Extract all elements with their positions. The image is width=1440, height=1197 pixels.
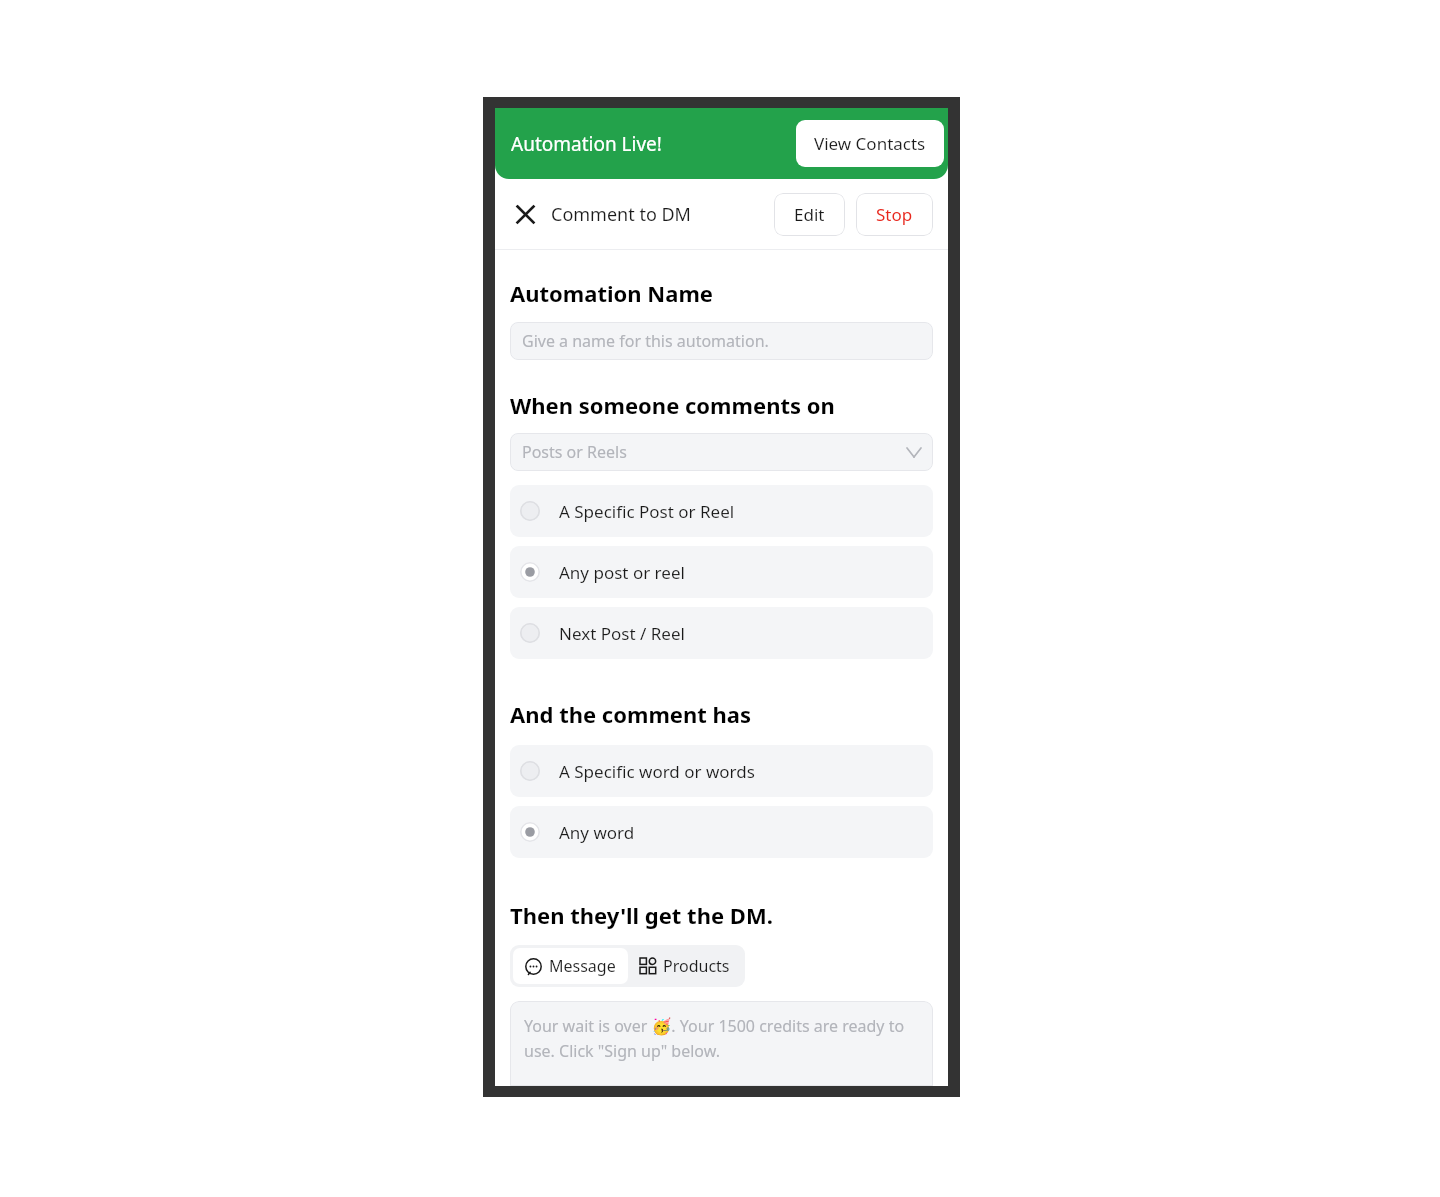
staticText: Message [549, 955, 616, 977]
staticText: Then they'll get the DM. [510, 900, 773, 930]
staticText: Any word [559, 821, 635, 844]
button[interactable]: Posts or Reels [510, 433, 933, 471]
staticText: Automation Name [510, 278, 713, 308]
staticText: A Specific Post or Reel [559, 500, 735, 523]
button[interactable]: Message [513, 948, 628, 984]
staticText: Edit [794, 203, 825, 226]
button[interactable]: Any word [510, 806, 933, 858]
staticText: Your wait is over 🥳. Your 1500 credits a… [524, 1015, 919, 1061]
staticText: Automation Live! [511, 131, 662, 157]
button[interactable]: Edit [774, 193, 845, 236]
staticText: Give a name for this automation. [522, 330, 769, 352]
staticText: Posts or Reels [522, 441, 627, 463]
button[interactable]: Your wait is over 🥳. Your 1500 credits a… [510, 1001, 933, 1086]
staticText: Comment to DM [551, 202, 691, 227]
staticText: Stop [876, 203, 913, 226]
button[interactable]: Next Post / Reel [510, 607, 933, 659]
button[interactable]: View Contacts [796, 120, 944, 167]
button[interactable]: Any post or reel [510, 546, 933, 598]
staticText: Next Post / Reel [559, 622, 685, 645]
button[interactable]: Products [628, 948, 742, 984]
staticText: Any post or reel [559, 561, 685, 584]
staticText: When someone comments on [510, 390, 835, 420]
staticText: A Specific word or words [559, 760, 755, 783]
button[interactable]: Stop [856, 193, 933, 236]
button[interactable]: Close [507, 196, 543, 232]
staticText: Products [663, 955, 730, 977]
button[interactable]: Give a name for this automation. [510, 322, 933, 360]
staticText: And the comment has [510, 699, 752, 729]
button[interactable]: A Specific Post or Reel [510, 485, 933, 537]
staticText: View Contacts [814, 132, 926, 155]
button[interactable]: A Specific word or words [510, 745, 933, 797]
